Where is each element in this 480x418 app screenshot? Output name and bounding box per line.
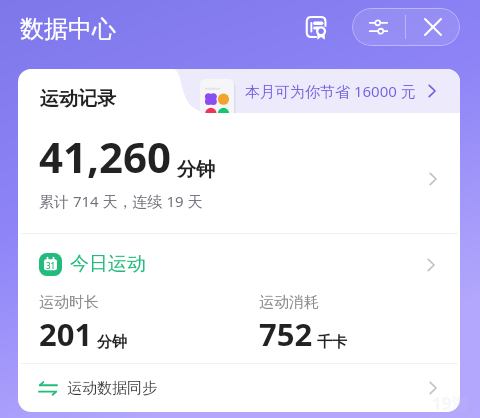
staticText: 分钟: [97, 333, 127, 352]
staticText: 本月可为你节省 16000 元: [245, 81, 416, 101]
staticText: 累计 714 天，连续 19 天: [39, 191, 203, 211]
button[interactable]: 关闭: [406, 8, 460, 46]
staticText: 752: [259, 313, 313, 355]
staticText: 数据中心: [20, 14, 116, 44]
staticText: 今日运动: [70, 252, 146, 276]
staticText: 运动时长: [39, 293, 99, 312]
button[interactable]: 本月可为你节省 16000 元: [158, 69, 460, 113]
staticText: 41,260: [39, 128, 172, 185]
staticText: 分钟: [177, 158, 215, 182]
staticText: 运动消耗: [259, 293, 319, 312]
staticText: 19游: [432, 392, 469, 415]
button[interactable]: 运动数据同步: [18, 364, 460, 412]
staticText: 201: [39, 313, 93, 355]
button[interactable]: 证书: [296, 7, 336, 47]
button[interactable]: 运动记录详情: [415, 161, 451, 197]
button[interactable]: 设置: [352, 8, 405, 46]
staticText: 运动数据同步: [67, 379, 157, 398]
staticText: www.19.com: [429, 411, 478, 418]
staticText: 千卡: [317, 333, 347, 352]
staticText: 运动记录: [40, 87, 116, 111]
button[interactable]: 今日运动详情: [413, 247, 449, 283]
staticText: 31: [46, 260, 56, 271]
